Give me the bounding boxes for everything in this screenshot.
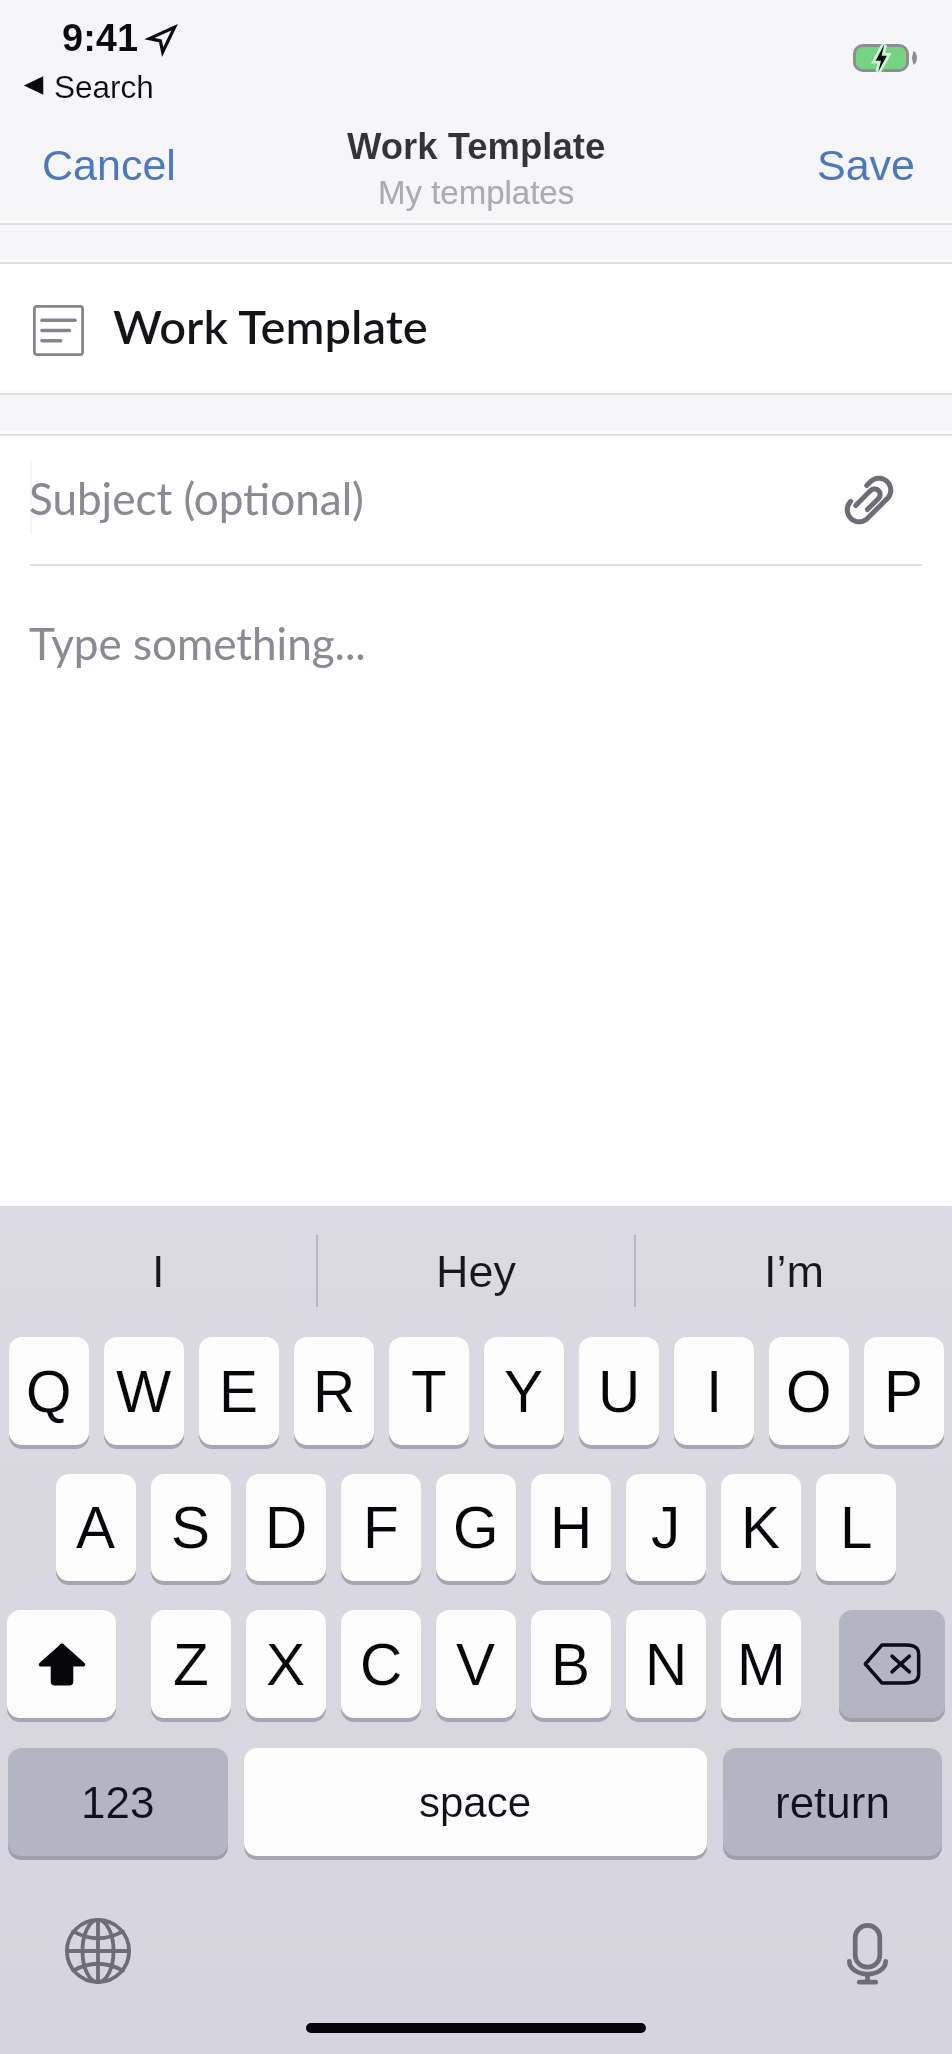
button[interactable]: G <box>436 1474 516 1581</box>
button[interactable]: X <box>246 1610 326 1718</box>
button[interactable]: Work Template <box>0 263 952 392</box>
button[interactable]: O <box>769 1337 849 1445</box>
staticText: E <box>219 1359 259 1424</box>
button[interactable]: U <box>579 1337 659 1445</box>
staticText: C <box>360 1632 403 1697</box>
button[interactable]: Save <box>774 124 916 206</box>
staticText: A <box>76 1495 116 1560</box>
button[interactable]: Z <box>151 1610 231 1718</box>
button[interactable]: Cancel <box>18 124 200 206</box>
button[interactable]: I <box>674 1337 754 1445</box>
staticText: Cancel <box>42 141 176 189</box>
staticText: Search <box>54 69 154 104</box>
button[interactable]: Change keyboard language <box>61 1914 135 1988</box>
staticText: L <box>840 1495 873 1560</box>
button[interactable]: V <box>436 1610 516 1718</box>
button[interactable]: S <box>151 1474 231 1581</box>
staticText: O <box>786 1359 832 1424</box>
staticText: space <box>419 1779 532 1826</box>
button[interactable]: 123 <box>8 1748 228 1856</box>
button[interactable]: C <box>341 1610 421 1718</box>
button[interactable]: Shift <box>7 1610 116 1718</box>
button[interactable]: Backspace <box>839 1610 945 1718</box>
staticText: I <box>152 1246 165 1296</box>
staticText: T <box>411 1359 447 1424</box>
staticText: P <box>884 1359 924 1424</box>
button[interactable]: E <box>199 1337 279 1445</box>
button[interactable]: Dictate <box>835 1919 899 1989</box>
staticText: I <box>706 1359 723 1424</box>
staticText: Work Template <box>347 126 606 167</box>
staticText: S <box>171 1495 211 1560</box>
staticText: Z <box>173 1632 209 1697</box>
staticText: D <box>265 1495 308 1560</box>
staticText: Q <box>26 1359 72 1424</box>
staticText: Subject (optional) <box>29 472 364 525</box>
button[interactable]: B <box>531 1610 611 1718</box>
staticText: R <box>313 1359 356 1424</box>
staticText: X <box>266 1632 306 1697</box>
button[interactable]: F <box>341 1474 421 1581</box>
staticText: N <box>645 1632 688 1697</box>
staticText: Hey <box>436 1246 517 1296</box>
staticText: G <box>453 1495 499 1560</box>
staticText: W <box>116 1359 172 1424</box>
staticText: I’m <box>764 1246 824 1296</box>
button[interactable]: D <box>246 1474 326 1581</box>
staticText: M <box>737 1632 786 1697</box>
button[interactable]: Y <box>484 1337 564 1445</box>
staticText: My templates <box>378 174 575 211</box>
button[interactable]: W <box>104 1337 184 1445</box>
staticText: V <box>456 1632 496 1697</box>
staticText: return <box>775 1778 890 1827</box>
staticText: 9:41 <box>62 17 139 59</box>
button[interactable]: L <box>816 1474 896 1581</box>
staticText: U <box>598 1359 641 1424</box>
button[interactable]: Q <box>9 1337 89 1445</box>
staticText: Type something... <box>29 617 366 670</box>
staticText: H <box>550 1495 593 1560</box>
staticText: F <box>363 1495 399 1560</box>
button[interactable]: J <box>626 1474 706 1581</box>
staticText: Y <box>504 1359 544 1424</box>
button[interactable]: space <box>244 1748 707 1856</box>
button[interactable]: I <box>0 1228 316 1314</box>
button[interactable]: H <box>531 1474 611 1581</box>
button[interactable]: P <box>864 1337 944 1445</box>
button[interactable]: N <box>626 1610 706 1718</box>
button[interactable]: M <box>721 1610 801 1718</box>
staticText: Work Template <box>113 298 428 354</box>
staticText: Save <box>817 141 916 189</box>
button[interactable]: A <box>56 1474 136 1581</box>
staticText: 123 <box>81 1778 155 1827</box>
button[interactable]: Attach file <box>833 464 905 536</box>
button[interactable]: T <box>389 1337 469 1445</box>
staticText: J <box>651 1495 681 1560</box>
staticText: K <box>741 1495 781 1560</box>
button[interactable]: K <box>721 1474 801 1581</box>
button[interactable]: return <box>723 1748 942 1856</box>
button[interactable]: R <box>294 1337 374 1445</box>
staticText: B <box>551 1632 591 1697</box>
button[interactable]: I’m <box>636 1228 952 1314</box>
button[interactable]: Hey <box>318 1228 634 1314</box>
